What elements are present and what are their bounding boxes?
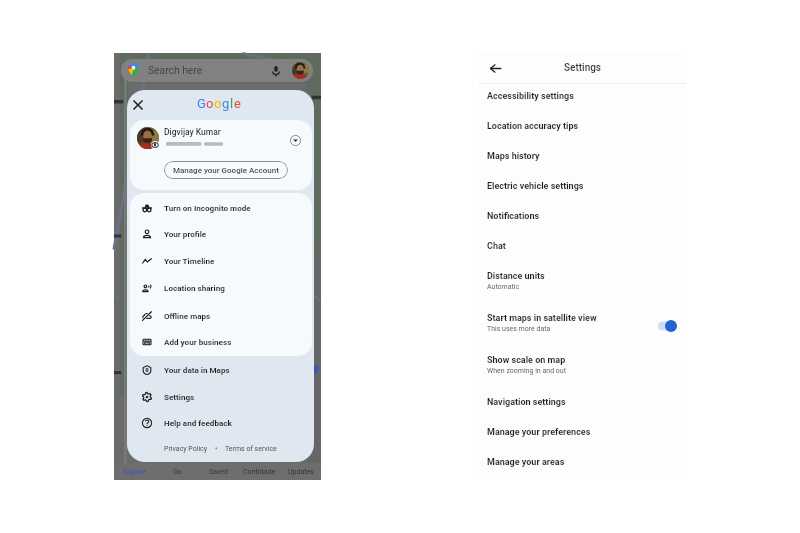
staticText: Privacy Policy xyxy=(164,445,208,453)
button[interactable]: Manage your Google Account xyxy=(164,161,288,179)
button[interactable]: Search here xyxy=(121,59,313,82)
staticText: Navigation settings xyxy=(487,397,566,408)
button[interactable]: Expand account list xyxy=(288,133,303,148)
button[interactable]: Electric vehicle settings xyxy=(479,175,686,205)
button[interactable]: Manage your preferences xyxy=(479,421,686,451)
staticText: Settings xyxy=(164,392,195,401)
button[interactable]: Chat xyxy=(479,235,686,265)
button[interactable]: Back xyxy=(486,59,504,77)
button[interactable]: Manage your areas xyxy=(479,451,686,479)
staticText: Your profile xyxy=(164,229,207,238)
button[interactable]: Close xyxy=(129,96,147,114)
staticText: o xyxy=(214,96,222,111)
button[interactable]: Settings xyxy=(127,383,314,410)
staticText: Chat xyxy=(487,241,506,252)
staticText: This uses more data xyxy=(487,325,551,333)
button[interactable]: Your profile xyxy=(127,220,314,247)
button[interactable]: Voice search xyxy=(268,63,283,78)
staticText: l xyxy=(230,96,234,111)
staticText: Your data in Maps xyxy=(164,365,230,374)
button[interactable]: Turn on Incognito mode xyxy=(127,194,314,221)
button[interactable]: Accessibility settings xyxy=(479,85,686,115)
staticText: Location sharing xyxy=(164,283,225,292)
staticText: Electric vehicle settings xyxy=(487,181,584,192)
staticText: g xyxy=(222,96,230,111)
staticText: Digvijay Kumar xyxy=(164,127,221,137)
button[interactable]: Navigation settings xyxy=(479,391,686,421)
staticText: Show scale on map xyxy=(487,355,566,366)
button[interactable]: Your Timeline xyxy=(127,247,314,274)
staticText: o xyxy=(206,96,214,111)
button[interactable]: Start maps in satellite view xyxy=(479,307,686,349)
staticText: G xyxy=(197,96,206,111)
button[interactable]: Account xyxy=(292,62,309,79)
button[interactable]: Privacy Policy xyxy=(164,445,208,453)
button[interactable]: Show scale on map xyxy=(479,349,686,391)
staticText: Maps history xyxy=(487,151,540,162)
staticText: Manage your areas xyxy=(487,457,565,468)
staticText: e xyxy=(234,96,241,111)
button[interactable]: Maps history xyxy=(479,145,686,175)
button[interactable]: Updates xyxy=(280,463,321,480)
button[interactable]: Terms of service xyxy=(225,445,277,453)
button[interactable]: Offline maps xyxy=(127,302,314,329)
staticText: Automatic xyxy=(487,283,520,291)
staticText: Start maps in satellite view xyxy=(487,313,597,324)
button[interactable]: Contribute xyxy=(239,463,280,480)
staticText: Go xyxy=(173,468,182,476)
button[interactable]: Location accuracy tips xyxy=(479,115,686,145)
staticText: Manage your preferences xyxy=(487,427,591,438)
button[interactable]: Saved xyxy=(198,463,239,480)
staticText: Accessibility settings xyxy=(487,91,574,102)
button[interactable]: Help and feedback xyxy=(127,409,314,436)
staticText: • xyxy=(208,445,225,453)
staticText: Updates xyxy=(288,468,314,476)
staticText: Settings xyxy=(564,62,602,74)
staticText: Distance units xyxy=(487,271,545,282)
staticText: Turn on Incognito mode xyxy=(164,203,251,212)
button[interactable]: Add your business xyxy=(127,328,314,355)
staticText: Saved xyxy=(209,468,228,476)
staticText: Offline maps xyxy=(164,311,211,320)
button[interactable]: Distance units xyxy=(479,265,686,307)
staticText: Manage your Google Account xyxy=(173,166,279,175)
staticText: Add your business xyxy=(164,337,232,346)
staticText: Your Timeline xyxy=(164,256,215,265)
staticText: Search here xyxy=(148,64,203,76)
staticText: Contribute xyxy=(243,468,276,476)
button[interactable]: Location sharing xyxy=(127,274,314,301)
staticText: Help and feedback xyxy=(164,418,232,427)
staticText: Location accuracy tips xyxy=(487,121,579,132)
button[interactable]: Start maps in satellite view toggle xyxy=(658,320,677,332)
button[interactable]: Notifications xyxy=(479,205,686,235)
staticText: When zooming in and out xyxy=(487,367,566,375)
staticText: Explore xyxy=(123,468,147,476)
button[interactable]: Your data in Maps xyxy=(127,356,314,383)
staticText: Terms of service xyxy=(225,445,277,453)
button[interactable]: Go xyxy=(156,463,198,480)
button[interactable]: Explore xyxy=(114,463,156,480)
staticText: Notifications xyxy=(487,211,540,222)
